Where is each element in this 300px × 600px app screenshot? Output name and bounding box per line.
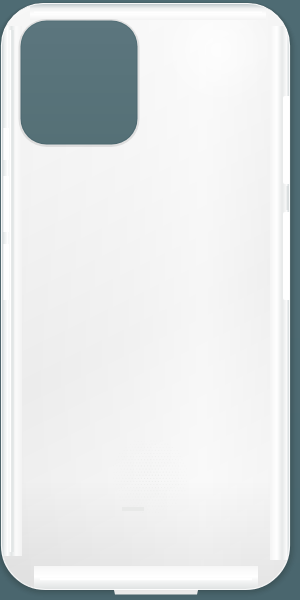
button[interactable]: Clear phone case product photo xyxy=(0,0,300,600)
